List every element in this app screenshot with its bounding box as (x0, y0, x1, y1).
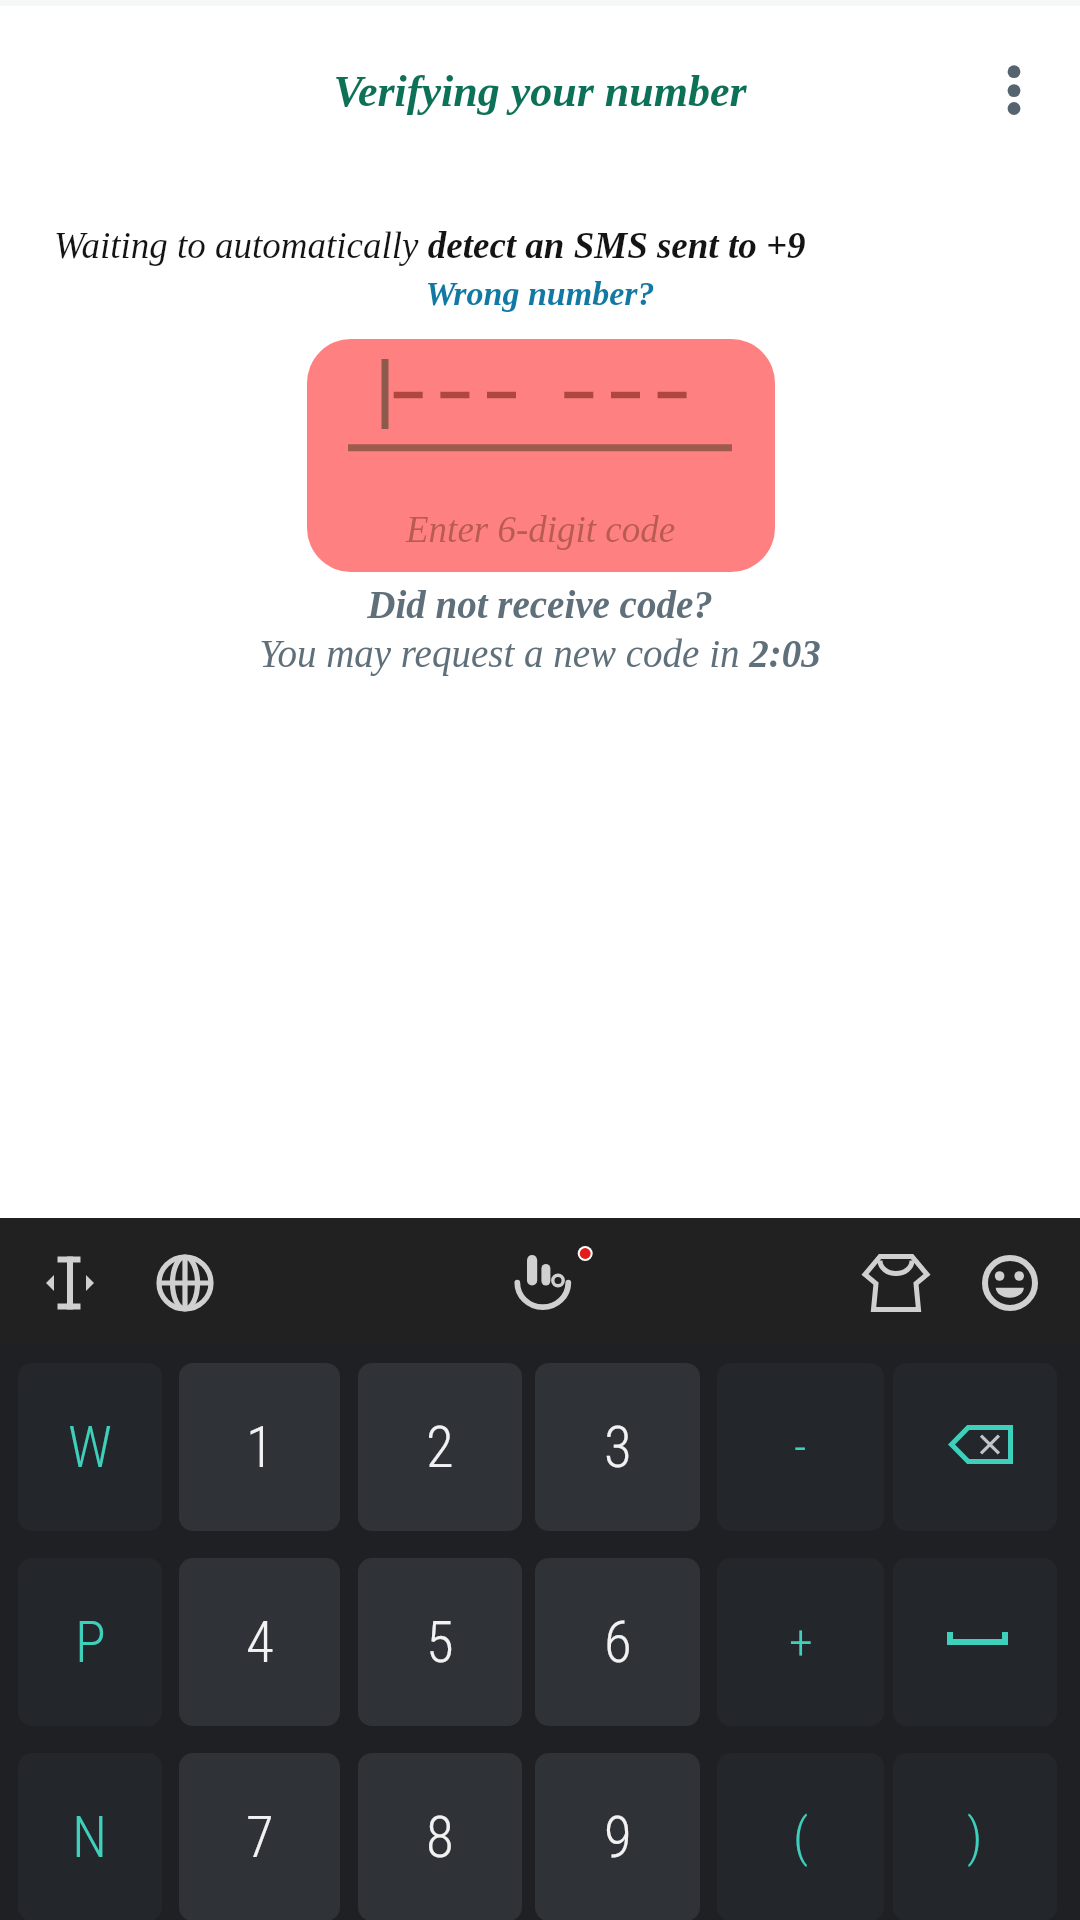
button[interactable]: 5 (358, 1558, 522, 1726)
staticText: N (72, 1804, 108, 1871)
button[interactable]: 8 (358, 1753, 522, 1920)
staticText: You may request a new code in 2:03 (0, 632, 1080, 675)
button[interactable]: 4 (179, 1558, 340, 1726)
button[interactable]: Backspace (893, 1363, 1057, 1531)
button[interactable]: Did not receive code? (0, 583, 1080, 626)
button[interactable]: 1 (179, 1363, 340, 1531)
button[interactable]: Wrong number? (0, 275, 1080, 313)
staticText: ( (793, 1807, 809, 1868)
staticText: - (794, 1419, 807, 1475)
staticText: 4 (246, 1609, 274, 1676)
staticText: 6 (604, 1609, 632, 1676)
button[interactable]: + (717, 1558, 884, 1726)
button[interactable]: 3 (535, 1363, 700, 1531)
staticText: 9 (604, 1804, 632, 1871)
button[interactable]: Emoji (968, 1241, 1052, 1325)
button[interactable]: W (18, 1363, 162, 1531)
staticText: ) (967, 1807, 983, 1868)
staticText: 8 (426, 1804, 454, 1871)
staticText: + (789, 1614, 813, 1670)
staticText: Waiting to automatically detect an SMS s… (54, 225, 806, 266)
staticText: 2 (426, 1414, 454, 1481)
staticText: Verifying your number (0, 67, 1080, 116)
staticText: 3 (604, 1414, 632, 1481)
staticText: 7 (246, 1804, 274, 1871)
staticText: W (68, 1414, 112, 1481)
staticText: 5 (426, 1609, 454, 1676)
button[interactable]: ( (717, 1753, 884, 1920)
button[interactable]: N (18, 1753, 162, 1920)
button[interactable]: Keyboard menu (501, 1239, 585, 1323)
button[interactable]: Switch language (143, 1241, 227, 1325)
button[interactable]: Keyboard theme (854, 1241, 938, 1325)
button[interactable]: Move cursor (28, 1241, 112, 1325)
button[interactable]: ) (893, 1753, 1057, 1920)
button[interactable]: 2 (358, 1363, 522, 1531)
button[interactable]: More options (969, 45, 1059, 135)
button[interactable]: 7 (179, 1753, 340, 1920)
button[interactable]: Space (893, 1558, 1057, 1726)
button[interactable]: 6 (535, 1558, 700, 1726)
staticText: 1 (246, 1414, 274, 1481)
button[interactable]: 9 (535, 1753, 700, 1920)
staticText: Enter 6-digit code (406, 509, 676, 550)
button[interactable]: - (717, 1363, 884, 1531)
button[interactable]: P (18, 1558, 162, 1726)
button[interactable]: Enter 6-digit code (307, 339, 775, 572)
staticText: P (75, 1609, 106, 1676)
